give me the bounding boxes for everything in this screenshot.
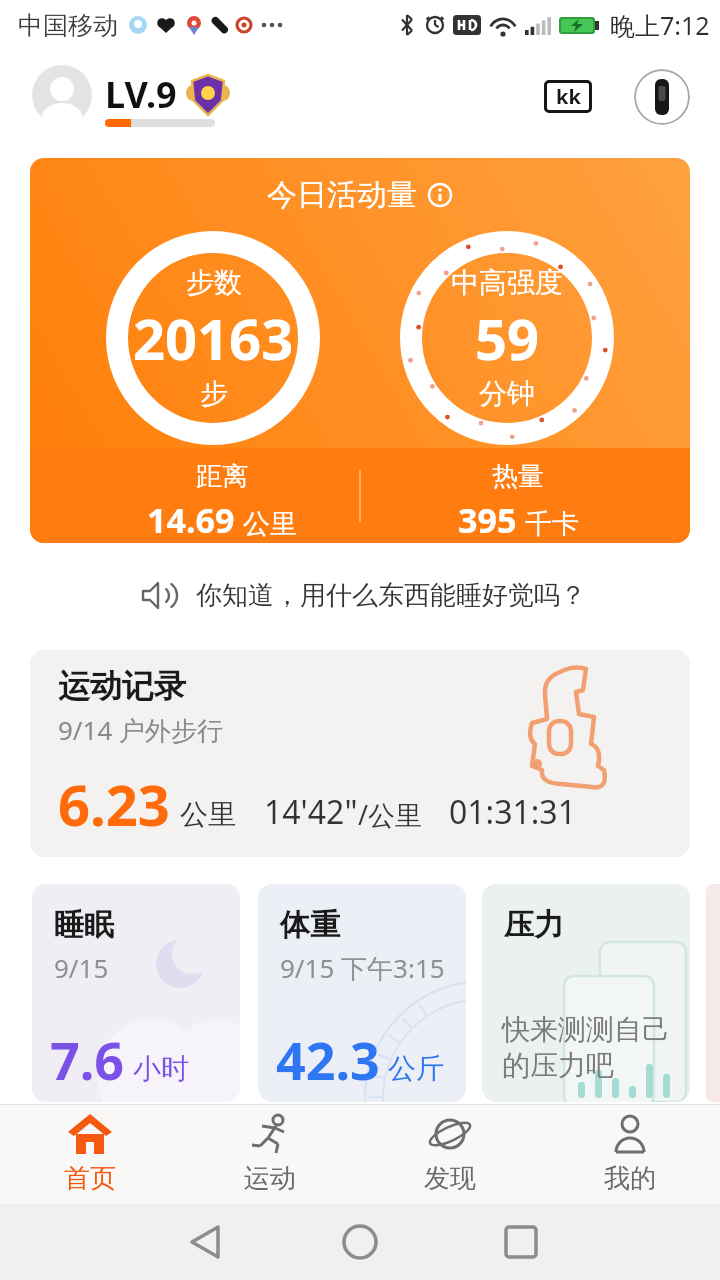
staticText: 热量 [492,460,544,493]
staticText: 01:31:31 [449,790,576,834]
button[interactable]: 你知道，用什么东西能睡好觉吗？ [0,543,720,650]
staticText: 你知道，用什么东西能睡好觉吗？ [196,579,586,612]
staticText: 压力 [504,906,564,944]
staticText: 公里 [243,507,297,541]
staticText: 公斤 [388,1051,444,1086]
staticText: 分钟 [479,376,535,411]
staticText: 9/15 [54,950,109,985]
button[interactable]: 发现 [360,1104,540,1204]
button[interactable] [32,65,92,125]
button[interactable]: 我的 [540,1104,720,1204]
button[interactable]: 今日活动量 [30,158,690,543]
button[interactable]: 运动 [180,1104,360,1204]
staticText: 快来测测自己 [502,1012,670,1047]
staticText: 公里 [180,797,236,832]
button[interactable]: 运动记录 [30,650,690,857]
staticText: 14'42" [264,790,358,834]
staticText: 59 [475,300,540,376]
staticText: kk [556,83,581,110]
staticText: 395 [458,497,517,543]
staticText: 中国移动 [18,10,118,41]
staticText: 距离 [196,460,248,493]
staticText: 睡眠 [54,906,114,944]
staticText: 7.6 [50,1024,125,1095]
staticText: 体重 [280,906,340,944]
staticText: 今日活动量 [267,176,417,214]
staticText: LV.9 [105,70,177,119]
staticText: 首页 [64,1162,116,1195]
staticText: 中高强度 [451,265,563,300]
staticText: 14.69 [147,497,235,543]
staticText: 9/14 户外步行 [58,712,224,748]
staticText: 步数 [186,265,242,300]
staticText: 我的 [604,1162,656,1195]
staticText: 的压力吧 [502,1048,614,1083]
button[interactable]: 首页 [0,1104,180,1204]
button[interactable]: 压力 [482,884,690,1102]
staticText: 运动 [244,1162,296,1195]
staticText: 6.23 [58,766,170,842]
staticText: 9/15 下午3:15 [280,950,445,986]
button[interactable]: 体重 [258,884,466,1102]
staticText: 步 [200,376,228,411]
button[interactable] [634,69,690,125]
button[interactable]: 睡眠 [32,884,240,1102]
staticText: 晚上7:12 [610,8,710,42]
staticText: 发现 [424,1162,476,1195]
staticText: 42.3 [276,1024,380,1095]
staticText: /公里 [358,796,423,833]
staticText: 运动记录 [58,666,186,706]
button[interactable]: kk [544,80,592,113]
staticText: 20163 [133,300,294,376]
staticText: 千卡 [525,507,579,541]
staticText: 小时 [133,1051,189,1086]
